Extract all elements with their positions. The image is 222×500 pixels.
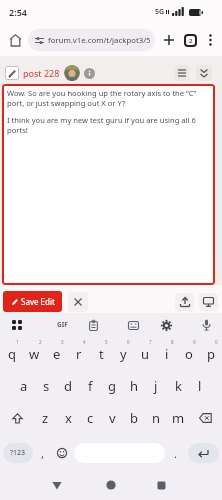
button[interactable]: m <box>167 402 189 434</box>
staticText: q <box>8 345 16 363</box>
button[interactable] <box>152 476 170 494</box>
button[interactable]: w <box>23 338 46 370</box>
staticText: k <box>175 377 182 395</box>
button[interactable]: s <box>35 370 57 402</box>
staticText: Wow. So are you hooking up the rotary ax… <box>7 88 197 108</box>
staticText: 5 <box>105 339 108 345</box>
staticText: 3 <box>61 339 64 345</box>
staticText: y <box>120 345 127 363</box>
staticText: g <box>108 377 116 395</box>
button[interactable] <box>68 292 88 312</box>
button[interactable]: y <box>112 338 134 370</box>
button[interactable]: i <box>156 338 178 370</box>
staticText: r <box>76 345 82 363</box>
button[interactable] <box>64 65 80 81</box>
button[interactable]: . <box>169 443 181 463</box>
staticText: GIF <box>57 320 68 329</box>
button[interactable] <box>102 476 120 494</box>
button[interactable] <box>161 32 177 48</box>
button[interactable]: t <box>90 338 112 370</box>
button[interactable]: g <box>101 370 123 402</box>
staticText: 8 <box>171 339 174 345</box>
staticText: 9 <box>193 339 196 345</box>
staticText: 4 <box>83 339 86 345</box>
button[interactable]: , <box>36 443 48 463</box>
button[interactable]: o <box>178 338 200 370</box>
button[interactable]: a <box>12 370 35 402</box>
button[interactable]: v <box>101 402 123 434</box>
button[interactable] <box>74 443 165 463</box>
button[interactable] <box>48 476 66 494</box>
button[interactable]: r <box>68 338 90 370</box>
staticText: , <box>41 446 44 461</box>
button[interactable]: forum.v1e.com/t/jackpot3/5 <box>28 29 155 51</box>
button[interactable] <box>84 316 102 334</box>
staticText: o <box>185 345 193 363</box>
button[interactable] <box>189 402 222 434</box>
staticText: t <box>99 345 104 363</box>
button[interactable]: d <box>57 370 79 402</box>
button[interactable]: x <box>57 402 79 434</box>
staticText: 5G <box>155 7 165 17</box>
staticText: post 228 <box>23 67 60 79</box>
staticText: w <box>29 345 40 363</box>
button[interactable] <box>197 316 215 334</box>
staticText: 2 <box>189 37 193 45</box>
button[interactable] <box>53 443 70 463</box>
button[interactable]: k <box>167 370 189 402</box>
staticText: s <box>43 377 50 395</box>
button[interactable] <box>204 34 216 46</box>
button[interactable]: e <box>46 338 68 370</box>
button[interactable]: h <box>123 370 145 402</box>
button[interactable] <box>175 293 194 311</box>
staticText: 7 <box>149 339 152 345</box>
button[interactable]: j <box>145 370 167 402</box>
button[interactable]: f <box>79 370 101 402</box>
button[interactable]: q <box>0 338 23 370</box>
button[interactable] <box>196 65 212 81</box>
staticText: n <box>152 409 161 427</box>
button[interactable]: b <box>123 402 145 434</box>
button[interactable] <box>5 66 19 80</box>
staticText: d <box>64 377 72 395</box>
button[interactable] <box>84 68 95 79</box>
staticText: v <box>109 409 116 427</box>
button[interactable] <box>188 443 219 463</box>
staticText: . <box>174 446 177 461</box>
staticText: l <box>198 377 202 395</box>
staticText: 6 <box>127 339 130 345</box>
staticText: 1 <box>16 339 19 345</box>
staticText: 0 <box>215 339 218 345</box>
button[interactable] <box>199 293 218 311</box>
staticText: x <box>65 409 72 427</box>
button[interactable]: l <box>189 370 211 402</box>
staticText: j <box>154 377 158 395</box>
button[interactable] <box>0 402 34 434</box>
button[interactable] <box>157 316 175 334</box>
button[interactable]: 2 <box>184 34 197 47</box>
staticText: a <box>20 377 28 395</box>
button[interactable]: z <box>34 402 57 434</box>
button[interactable]: n <box>145 402 167 434</box>
button[interactable]: p <box>200 338 222 370</box>
button[interactable]: ?123 <box>3 443 33 463</box>
button[interactable]: Save Edit <box>3 291 62 312</box>
staticText: 2 <box>39 339 42 345</box>
button[interactable] <box>5 30 25 50</box>
staticText: c <box>87 409 94 427</box>
button[interactable]: GIF <box>52 316 72 333</box>
staticText: u <box>141 345 150 363</box>
button[interactable] <box>8 316 26 334</box>
staticText: 2:54 <box>9 6 27 18</box>
button[interactable] <box>124 316 142 334</box>
button[interactable]: u <box>134 338 156 370</box>
staticText: ?123 <box>10 448 26 458</box>
staticText: i <box>165 345 169 363</box>
staticText: Save Edit <box>21 296 55 307</box>
button[interactable] <box>174 65 189 81</box>
staticText: m <box>172 409 185 427</box>
staticText: e <box>53 345 61 363</box>
button[interactable]: c <box>79 402 101 434</box>
staticText: b <box>130 409 138 427</box>
staticText: I think you are my new test guru if you … <box>7 115 196 135</box>
